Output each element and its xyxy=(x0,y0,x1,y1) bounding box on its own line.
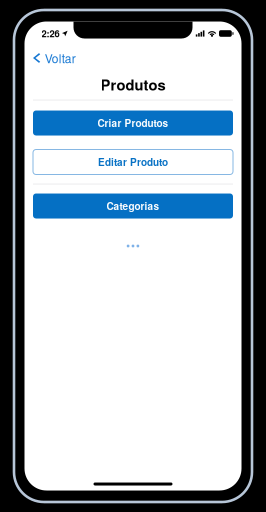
button[interactable]: Editar Produto xyxy=(33,149,233,174)
staticText: Editar Produto xyxy=(98,155,168,169)
button[interactable]: Categorias xyxy=(33,193,233,218)
button[interactable]: Criar Produtos xyxy=(33,110,233,135)
staticText: Voltar xyxy=(45,49,76,67)
button[interactable]: Voltar xyxy=(24,45,241,70)
staticText: Criar Produtos xyxy=(97,116,168,130)
staticText: Produtos xyxy=(100,74,165,95)
staticText: 2:26 xyxy=(41,27,59,40)
staticText: Categorias xyxy=(106,199,159,213)
